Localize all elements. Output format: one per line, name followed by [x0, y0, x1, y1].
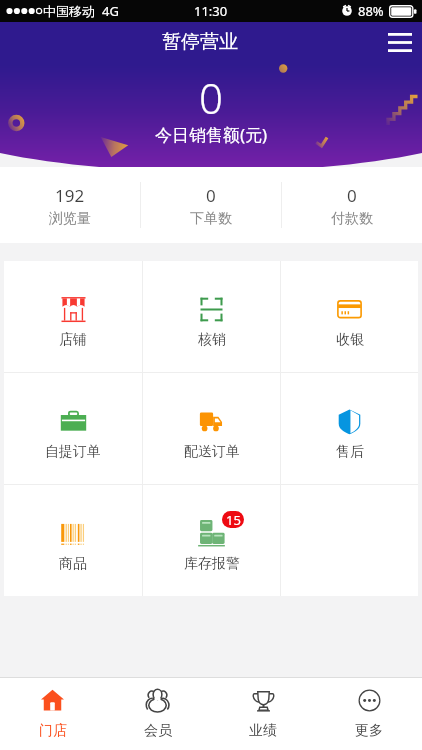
staticText: 会员 — [144, 722, 172, 740]
staticText: 配送订单 — [184, 443, 240, 461]
staticText: 0 — [199, 69, 223, 126]
staticText: 0 — [206, 184, 216, 207]
staticText: 中国移动 — [43, 3, 95, 19]
staticText: 4G — [102, 2, 119, 20]
button[interactable]: 会员 — [105, 678, 210, 750]
staticText: 售后 — [336, 443, 364, 461]
staticText: 付款数 — [331, 210, 373, 228]
button[interactable]: 商品 — [4, 485, 142, 596]
staticText: 自提订单 — [45, 443, 101, 461]
staticText: 今日销售额(元) — [155, 123, 268, 146]
staticText: 收银 — [336, 331, 364, 349]
staticText: 门店 — [39, 722, 67, 740]
button[interactable]: 15 — [143, 485, 280, 596]
staticText: 192 — [55, 184, 85, 207]
staticText: 更多 — [355, 722, 383, 740]
button[interactable]: 收银 — [281, 261, 418, 372]
button[interactable]: 配送订单 — [143, 373, 280, 484]
button[interactable]: 门店 — [0, 678, 105, 750]
button[interactable]: 更多 — [316, 678, 422, 750]
staticText: 0 — [347, 184, 357, 207]
staticText: 浏览量 — [49, 210, 91, 228]
staticText: 核销 — [198, 331, 226, 349]
staticText: 商品 — [59, 555, 87, 573]
button[interactable]: 0 — [141, 167, 281, 243]
staticText: 业绩 — [249, 722, 277, 740]
button[interactable]: 核销 — [143, 261, 280, 372]
staticText: 店铺 — [59, 331, 87, 349]
button[interactable]: 自提订单 — [4, 373, 142, 484]
button[interactable]: 店铺 — [4, 261, 142, 372]
staticText: 下单数 — [190, 210, 232, 228]
staticText: 11:30 — [194, 2, 228, 20]
staticText: 88% — [358, 2, 384, 20]
button[interactable]: 售后 — [281, 373, 418, 484]
staticText: 15 — [226, 511, 241, 528]
staticText: 暂停营业 — [162, 30, 238, 54]
staticText: 库存报警 — [184, 555, 240, 573]
button[interactable]: 0 — [282, 167, 422, 243]
button[interactable]: 业绩 — [210, 678, 316, 750]
button[interactable]: 192 — [0, 167, 140, 243]
button[interactable]: Menu — [380, 22, 420, 62]
